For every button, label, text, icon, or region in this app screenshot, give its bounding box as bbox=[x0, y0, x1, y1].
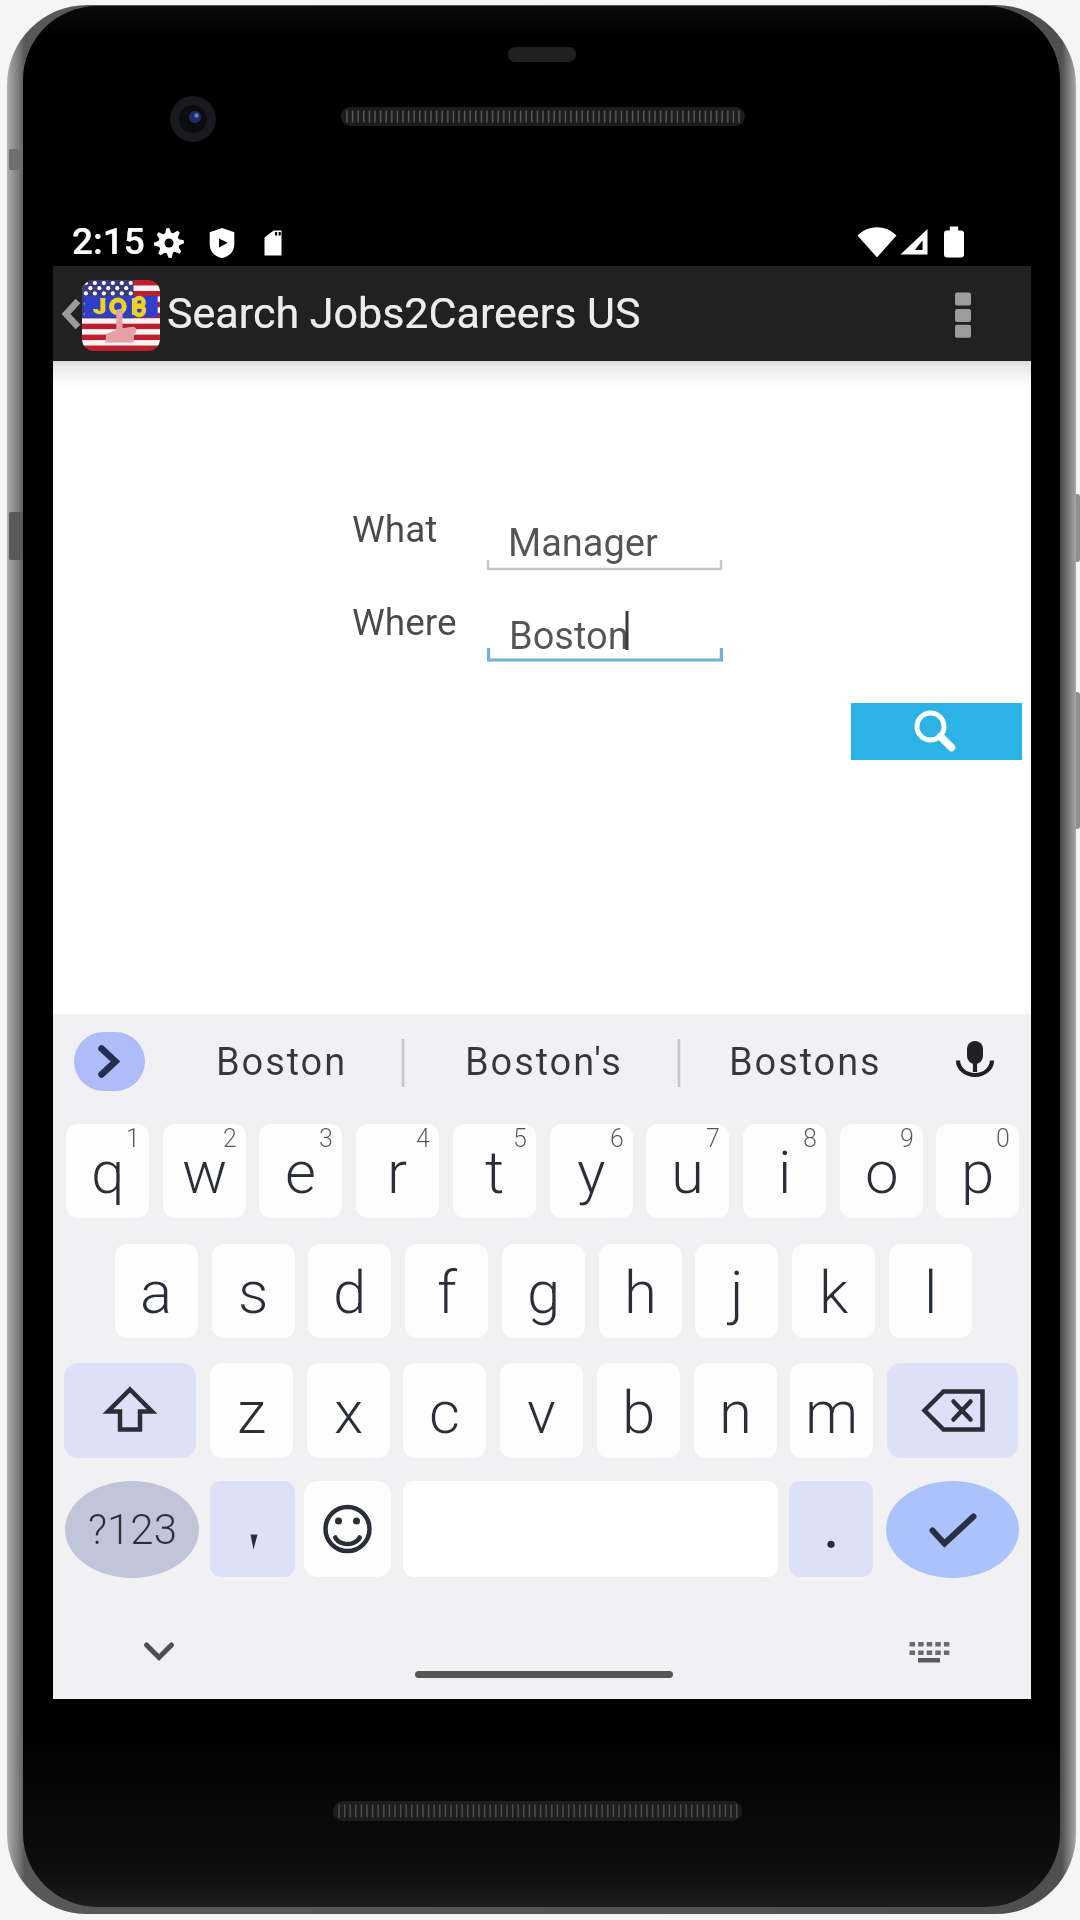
button[interactable]: h bbox=[599, 1244, 682, 1338]
staticText: 2:15 bbox=[72, 220, 145, 263]
staticText: 9 bbox=[900, 1124, 914, 1153]
button[interactable]: Hide keyboard bbox=[124, 1616, 194, 1686]
staticText: 6 bbox=[610, 1124, 624, 1153]
staticText: l bbox=[924, 1257, 938, 1327]
staticText: ?123 bbox=[88, 1505, 177, 1554]
staticText: Bostons bbox=[729, 1040, 882, 1085]
button[interactable]: Enter bbox=[886, 1481, 1019, 1578]
staticText: i bbox=[778, 1137, 792, 1207]
button[interactable]: Navigate up bbox=[53, 266, 93, 361]
button[interactable]: u bbox=[646, 1124, 729, 1218]
staticText: d bbox=[333, 1257, 367, 1327]
staticText: o bbox=[865, 1137, 899, 1207]
button[interactable]: w bbox=[163, 1124, 246, 1218]
staticText: p bbox=[961, 1137, 995, 1207]
button[interactable]: More options bbox=[931, 266, 1011, 361]
button[interactable]: y bbox=[550, 1124, 633, 1218]
staticText: b bbox=[622, 1377, 656, 1447]
button[interactable]: v bbox=[500, 1363, 583, 1458]
staticText: n bbox=[719, 1377, 752, 1447]
button[interactable]: i bbox=[743, 1124, 826, 1218]
button[interactable]: d bbox=[308, 1244, 391, 1338]
button[interactable]: g bbox=[502, 1244, 585, 1338]
staticText: g bbox=[527, 1257, 561, 1327]
staticText: 0 bbox=[996, 1124, 1010, 1153]
staticText: v bbox=[527, 1377, 556, 1447]
button[interactable]: Boston bbox=[487, 614, 723, 661]
button[interactable]: x bbox=[307, 1363, 390, 1458]
button[interactable]: Emoji bbox=[304, 1481, 391, 1577]
button[interactable]: n bbox=[694, 1363, 777, 1458]
staticText: Search Jobs2Careers US bbox=[167, 288, 641, 338]
staticText: k bbox=[819, 1257, 849, 1327]
button[interactable]: s bbox=[212, 1244, 295, 1338]
button[interactable]: f bbox=[405, 1244, 488, 1338]
button[interactable]: o bbox=[840, 1124, 923, 1218]
staticText: 8 bbox=[803, 1124, 817, 1153]
button[interactable]: z bbox=[210, 1363, 293, 1458]
staticText: u bbox=[671, 1137, 704, 1207]
button[interactable]: Backspace bbox=[887, 1363, 1018, 1458]
button[interactable]: k bbox=[792, 1244, 875, 1338]
staticText: q bbox=[91, 1137, 125, 1207]
button[interactable]: m bbox=[790, 1363, 873, 1458]
staticText: 7 bbox=[706, 1124, 720, 1153]
staticText: w bbox=[182, 1137, 228, 1207]
button[interactable]: Boston's bbox=[428, 1014, 660, 1110]
button[interactable]: Manager bbox=[487, 521, 722, 570]
staticText: j bbox=[730, 1257, 744, 1327]
button[interactable]: b bbox=[597, 1363, 680, 1458]
staticText: y bbox=[577, 1137, 606, 1207]
button[interactable]: r bbox=[356, 1124, 439, 1218]
button[interactable]: t bbox=[453, 1124, 536, 1218]
staticText: e bbox=[285, 1137, 317, 1207]
staticText: r bbox=[387, 1137, 408, 1207]
button[interactable]: c bbox=[403, 1363, 486, 1458]
staticText: 5 bbox=[513, 1124, 527, 1153]
button[interactable]: Period bbox=[789, 1481, 873, 1577]
button[interactable]: p bbox=[936, 1124, 1019, 1218]
staticText: f bbox=[437, 1257, 457, 1327]
button[interactable]: ?123 bbox=[65, 1481, 199, 1578]
staticText: a bbox=[140, 1257, 173, 1327]
button[interactable]: q bbox=[66, 1124, 149, 1218]
button[interactable]: Boston bbox=[184, 1014, 380, 1110]
staticText: 3 bbox=[319, 1124, 333, 1153]
button[interactable]: e bbox=[259, 1124, 342, 1218]
staticText: m bbox=[805, 1377, 859, 1447]
button[interactable]: Voice input bbox=[927, 1014, 1023, 1110]
staticText: x bbox=[334, 1377, 364, 1447]
staticText: Boston bbox=[509, 614, 629, 659]
button[interactable]: Shift bbox=[64, 1363, 196, 1458]
staticText: Boston's bbox=[465, 1040, 623, 1085]
staticText: c bbox=[429, 1377, 460, 1447]
button[interactable]: Search bbox=[851, 703, 1022, 760]
staticText: Manager bbox=[508, 521, 658, 566]
staticText: 1 bbox=[126, 1124, 140, 1153]
button[interactable]: Bostons bbox=[695, 1014, 915, 1110]
button[interactable]: More suggestions bbox=[74, 1032, 145, 1091]
button[interactable]: j bbox=[695, 1244, 778, 1338]
staticText: t bbox=[485, 1137, 505, 1207]
staticText: s bbox=[238, 1257, 269, 1327]
button[interactable]: l bbox=[889, 1244, 972, 1338]
staticText: 4 bbox=[416, 1124, 430, 1153]
staticText: What bbox=[352, 508, 438, 551]
staticText: z bbox=[237, 1377, 267, 1447]
staticText: 2 bbox=[223, 1124, 237, 1153]
staticText: h bbox=[624, 1257, 657, 1327]
button[interactable]: Change keyboard bbox=[894, 1615, 964, 1685]
staticText: Where bbox=[352, 601, 457, 644]
button[interactable]: Comma bbox=[210, 1481, 295, 1577]
staticText: Boston bbox=[216, 1040, 348, 1085]
button[interactable]: a bbox=[115, 1244, 198, 1338]
